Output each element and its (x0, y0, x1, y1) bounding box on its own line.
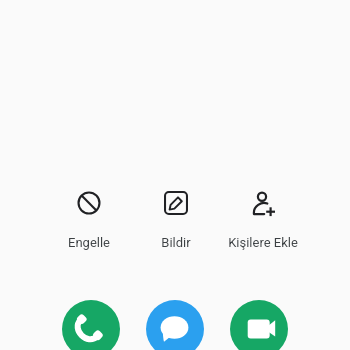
staticText: Bildir (161, 235, 191, 250)
button[interactable]: Video call (230, 300, 288, 350)
button[interactable]: Bildir (132, 190, 219, 250)
button[interactable]: Engelle (45, 190, 132, 250)
button[interactable]: Call (62, 300, 120, 350)
staticText: Engelle (68, 235, 110, 250)
button[interactable]: Kişilere Ekle (219, 190, 306, 250)
staticText: Kişilere Ekle (228, 235, 298, 250)
button[interactable]: Message (146, 300, 204, 350)
